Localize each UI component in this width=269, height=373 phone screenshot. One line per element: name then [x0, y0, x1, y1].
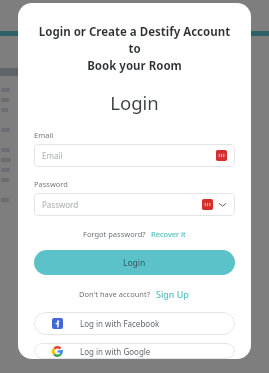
- staticText: Password: [42, 199, 79, 210]
- button[interactable]: Log in with Facebook: [34, 312, 235, 335]
- staticText: Log in with Google: [80, 346, 151, 357]
- button[interactable]: Email: [34, 144, 235, 167]
- staticText: Sign Up: [156, 288, 189, 300]
- staticText: Login or Create a Destify Account to Boo…: [34, 24, 235, 74]
- staticText: Forgot password?: [83, 229, 146, 239]
- button[interactable]: Password: [34, 193, 235, 216]
- staticText: Log in with Facebook: [80, 318, 160, 329]
- button[interactable]: Log in with Google: [34, 343, 235, 359]
- other: Show password options: [218, 200, 227, 209]
- button[interactable]: Login: [34, 250, 235, 275]
- button[interactable]: Sign Up: [155, 287, 190, 301]
- button[interactable]: Recover it: [150, 228, 187, 240]
- staticText: Login: [123, 257, 146, 269]
- staticText: Email: [42, 150, 63, 161]
- staticText: Email: [34, 130, 54, 140]
- staticText: Password: [34, 179, 68, 189]
- staticText: Don't have account?: [79, 289, 150, 299]
- staticText: Login: [34, 90, 235, 115]
- staticText: Recover it: [151, 229, 186, 239]
